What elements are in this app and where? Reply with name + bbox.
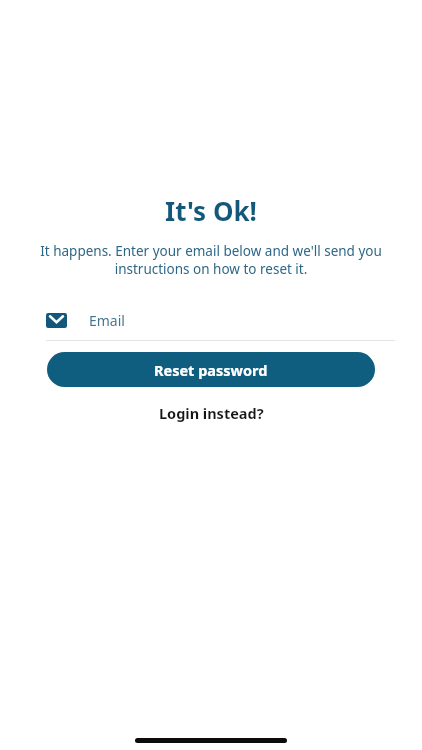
staticText: Email xyxy=(89,311,125,330)
button[interactable]: Reset password xyxy=(47,352,375,387)
button[interactable]: Login instead? xyxy=(151,400,272,426)
button[interactable]: Email xyxy=(46,306,395,334)
staticText: It happens. Enter your email below and w… xyxy=(14,242,408,278)
staticText: It's Ok! xyxy=(165,193,257,228)
staticText: Reset password xyxy=(154,360,268,380)
staticText: Login instead? xyxy=(159,403,264,423)
other: Email xyxy=(46,313,67,328)
